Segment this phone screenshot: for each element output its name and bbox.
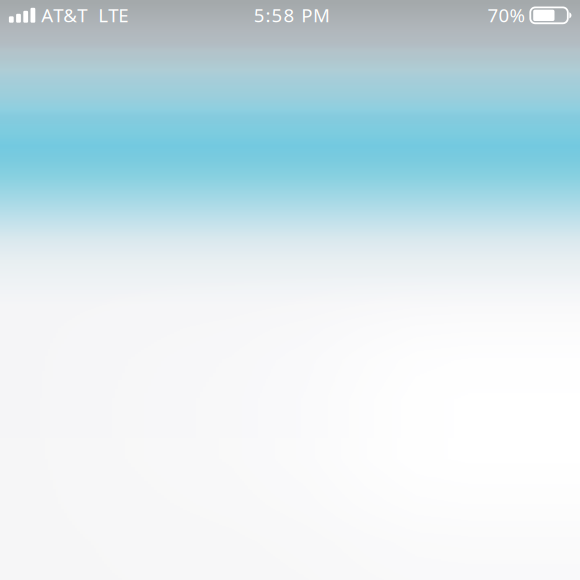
staticText: M (313, 2, 330, 27)
staticText: 5 (254, 2, 265, 27)
staticText: 0 (498, 2, 509, 27)
staticText: 7 (487, 2, 498, 27)
staticText (295, 2, 300, 27)
staticText: % (509, 2, 525, 27)
staticText: L (98, 2, 108, 27)
staticText: & (63, 2, 77, 27)
staticText: P (301, 2, 312, 27)
staticText: : (266, 2, 271, 27)
staticText: T (108, 2, 118, 27)
staticText: T (77, 2, 87, 27)
staticText: E (118, 2, 128, 27)
staticText: 8 (283, 2, 294, 27)
staticText: A (41, 2, 53, 27)
staticText: T (53, 2, 63, 27)
staticText: 5 (271, 2, 282, 27)
